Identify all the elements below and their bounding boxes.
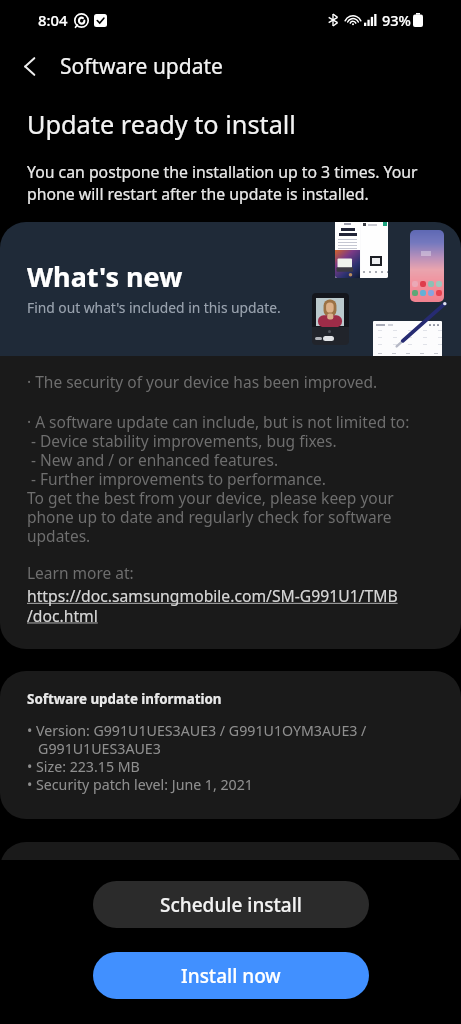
staticText: Software update (60, 52, 223, 81)
staticText: • Version: G991U1UES3AUE3 / G991U1OYM3AU… (27, 721, 367, 794)
staticText: Install now (181, 963, 281, 989)
button[interactable]: What's new (0, 222, 461, 356)
staticText: You can postpone the installation up to … (27, 161, 418, 205)
button[interactable]: Schedule install (93, 881, 369, 928)
staticText: · A software update can include, but is … (27, 411, 410, 546)
staticText: Find out what's included in this update. (27, 298, 281, 317)
staticText: 93% (382, 10, 411, 30)
staticText: Software update information (27, 690, 222, 708)
staticText: Schedule install (160, 892, 302, 918)
button[interactable]: Install now (93, 952, 369, 999)
staticText: Learn more at: (27, 562, 134, 583)
staticText: 8:04 (38, 10, 68, 30)
staticText: · The security of your device has been i… (27, 371, 378, 392)
button[interactable]: Back (0, 40, 60, 92)
staticText: What's new (27, 258, 183, 295)
staticText: https://doc.samsungmobile.com/SM-G991U1/… (27, 585, 398, 626)
staticText: Update ready to install (27, 107, 296, 141)
